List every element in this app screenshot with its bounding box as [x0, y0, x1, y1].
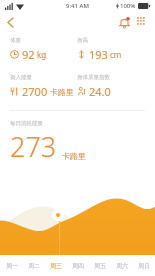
staticText: 周日 [138, 262, 150, 270]
button[interactable] [0, 183, 155, 255]
staticText: 周一 [6, 262, 18, 270]
button[interactable]: Notifications [115, 13, 133, 31]
staticText: 273 [10, 128, 57, 165]
staticText: 体重 [10, 37, 21, 44]
staticText: kg [37, 49, 47, 60]
staticText: 卡路里 [50, 87, 74, 97]
staticText: 100% [120, 2, 136, 10]
staticText: 卡路里 [62, 151, 86, 161]
staticText: 每日消耗能量 [10, 120, 43, 127]
button[interactable]: 周一 [0, 262, 23, 270]
button[interactable]: 身高 [77, 37, 145, 62]
staticText: 周四 [72, 262, 84, 270]
staticText: 24.0 [89, 84, 111, 99]
button[interactable]: 周四 [67, 262, 89, 270]
staticText: 周三 [50, 262, 62, 270]
button[interactable]: Back [0, 12, 20, 32]
button[interactable]: 摄入能量 [10, 74, 77, 99]
staticText: 9:41 AM [66, 2, 89, 10]
staticText: cm [110, 49, 122, 60]
button[interactable]: 身体质量指数 [77, 74, 145, 99]
staticText: 周五 [94, 262, 106, 270]
button[interactable]: 周三 [45, 262, 67, 270]
button[interactable]: 周日 [133, 262, 155, 270]
staticText: 193 [89, 47, 108, 62]
button[interactable]: 体重 [10, 37, 77, 62]
staticText: 身高 [77, 37, 88, 44]
staticText: 周二 [28, 262, 40, 270]
staticText: 92 [22, 47, 35, 62]
staticText: 摄入能量 [10, 74, 32, 81]
staticText: 2700 [22, 84, 48, 99]
staticText: 周六 [116, 262, 128, 270]
button[interactable]: 周二 [23, 262, 45, 270]
button[interactable]: 周五 [89, 262, 111, 270]
button[interactable]: 周六 [111, 262, 133, 270]
staticText: 身体质量指数 [77, 74, 110, 81]
button[interactable]: Menu [133, 13, 151, 31]
